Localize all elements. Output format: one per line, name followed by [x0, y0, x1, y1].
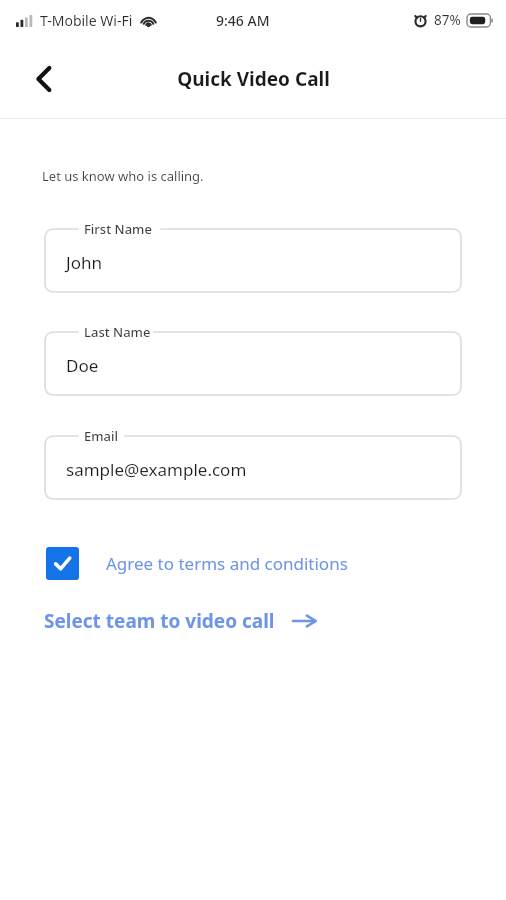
staticText: Select team to video call: [44, 608, 275, 634]
button[interactable]: Email: [45, 436, 461, 499]
staticText: Email: [84, 427, 119, 445]
staticText: 87%: [434, 11, 461, 29]
staticText: Quick Video Call: [177, 66, 330, 92]
staticText: John: [66, 251, 102, 274]
staticText: sample@example.com: [66, 458, 247, 481]
staticText: 9:46 AM: [216, 11, 270, 30]
staticText: Doe: [66, 354, 99, 377]
button[interactable]: Agree to terms and conditions: [46, 547, 348, 580]
staticText: Let us know who is calling.: [42, 167, 204, 185]
staticText: Agree to terms and conditions: [106, 552, 348, 575]
staticText: Last Name: [84, 323, 151, 341]
button[interactable]: Last Name: [45, 332, 461, 395]
staticText: First Name: [84, 220, 152, 238]
button[interactable]: First Name: [45, 229, 461, 292]
staticText: T-Mobile Wi-Fi: [40, 11, 133, 30]
button[interactable]: Back: [22, 57, 66, 101]
button[interactable]: Select team to video call: [44, 608, 317, 634]
